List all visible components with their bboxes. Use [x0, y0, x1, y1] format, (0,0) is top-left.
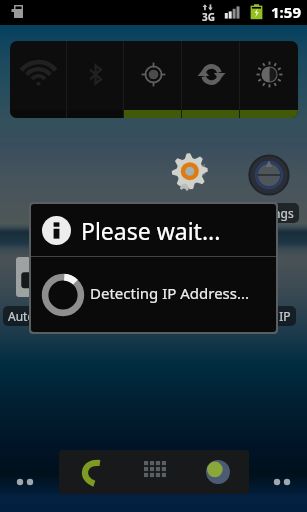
- button[interactable]: Compass: [249, 155, 289, 195]
- staticText: 1:59: [271, 2, 301, 22]
- button[interactable]: Toggle: [124, 41, 182, 118]
- staticText: Copy IP: [248, 308, 291, 324]
- button[interactable]: Browser: [186, 450, 249, 494]
- staticText: Detecting IP Address...: [90, 283, 250, 303]
- button[interactable]: Toggle: [10, 41, 67, 118]
- button[interactable]: Settings: [171, 152, 211, 192]
- button[interactable]: Toggle: [182, 41, 240, 118]
- button[interactable]: Toggle: [67, 41, 124, 118]
- staticText: Auto...: [8, 308, 45, 324]
- button[interactable]: All apps: [123, 450, 186, 494]
- button[interactable]: Phone: [59, 450, 123, 494]
- staticText: Please wait...: [81, 215, 221, 246]
- staticText: 3G: [202, 10, 215, 24]
- button[interactable]: Toggle: [240, 41, 298, 118]
- staticText: Settings: [248, 205, 294, 221]
